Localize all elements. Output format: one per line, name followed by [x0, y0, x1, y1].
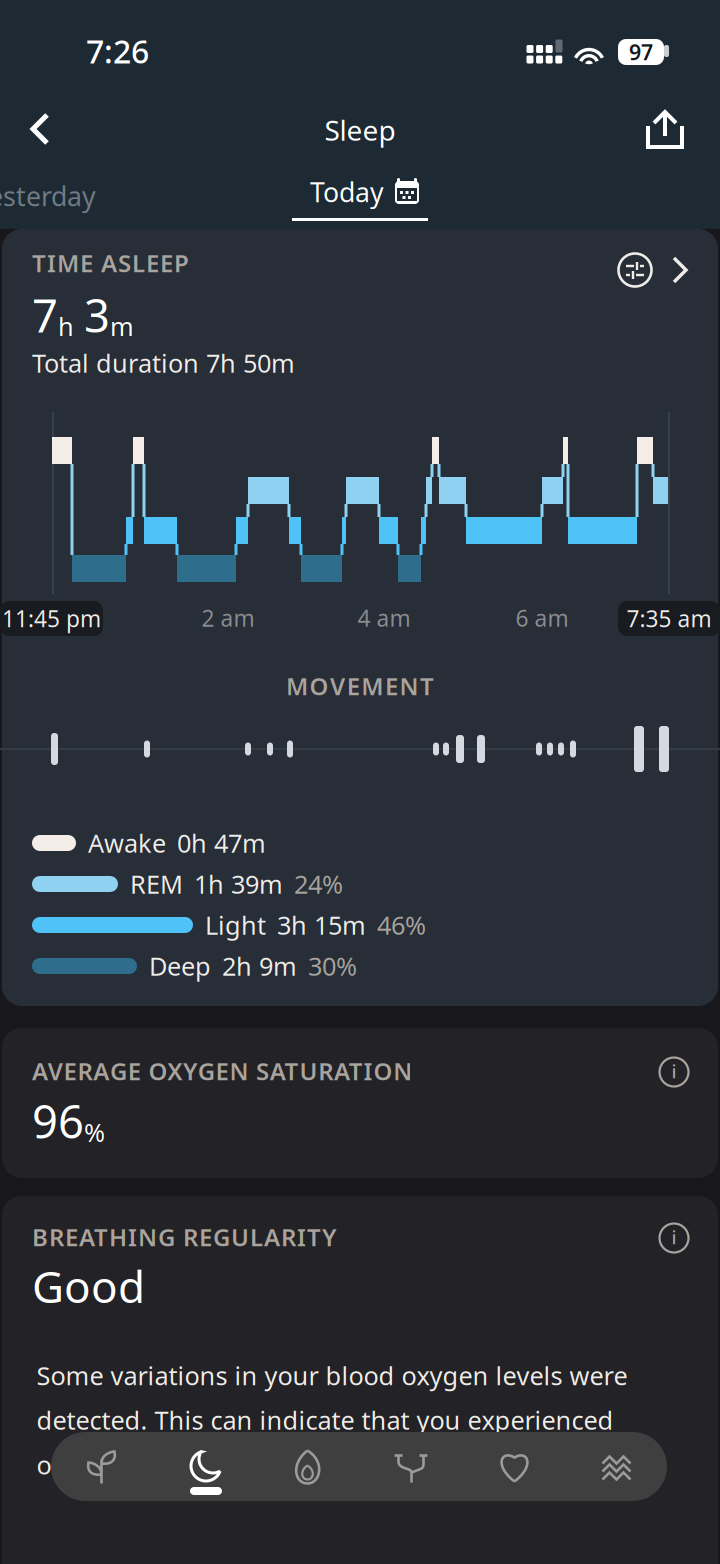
- button[interactable]: Info about average oxygen saturation: [658, 1056, 690, 1088]
- button[interactable]: More details: [660, 250, 700, 290]
- staticText: 97: [629, 38, 653, 66]
- staticText: Awake: [88, 826, 166, 860]
- button[interactable]: esterday: [0, 178, 118, 214]
- button[interactable]: Share: [630, 105, 700, 155]
- staticText: Some variations in your blood oxygen lev…: [36, 1358, 627, 1481]
- staticText: esterday: [0, 178, 96, 214]
- button[interactable]: Adjust: [615, 250, 655, 290]
- button[interactable]: Vitals: [360, 1432, 463, 1501]
- staticText: 1h 39m: [194, 867, 283, 901]
- staticText: Today: [310, 174, 384, 210]
- button[interactable]: Sleep: [154, 1432, 257, 1501]
- staticText: Sleep: [324, 111, 395, 149]
- staticText: 0h 47m: [177, 826, 266, 860]
- staticText: i: [671, 1059, 676, 1083]
- staticText: 46%: [377, 908, 426, 942]
- staticText: h: [58, 309, 74, 343]
- button[interactable]: Today: [292, 176, 428, 228]
- staticText: 7:35 am: [626, 603, 711, 633]
- button[interactable]: Trends: [566, 1432, 669, 1501]
- staticText: BREATHING REGULARITY: [32, 1221, 336, 1253]
- button[interactable]: Back: [8, 104, 72, 154]
- staticText: 3h 15m: [277, 908, 366, 942]
- staticText: Total duration 7h 50m: [32, 346, 295, 380]
- staticText: 7:26: [86, 30, 149, 72]
- staticText: REM: [130, 867, 183, 901]
- staticText: 2h 9m: [222, 949, 297, 983]
- staticText: 6 am: [515, 603, 568, 633]
- staticText: Good: [32, 1257, 145, 1315]
- staticText: 96: [32, 1091, 84, 1151]
- staticText: 2 am: [201, 603, 254, 633]
- staticText: 4 am: [357, 603, 410, 633]
- staticText: 11:45 pm: [2, 603, 101, 633]
- staticText: 3: [84, 285, 110, 345]
- staticText: %: [84, 1115, 105, 1149]
- staticText: 7: [32, 285, 58, 345]
- button[interactable]: Activity: [257, 1432, 360, 1501]
- staticText: MOVEMENT: [286, 670, 434, 702]
- staticText: 30%: [308, 949, 357, 983]
- staticText: i: [671, 1225, 676, 1249]
- staticText: Light: [205, 908, 266, 942]
- staticText: TIME ASLEEP: [32, 247, 189, 279]
- button[interactable]: Readiness: [51, 1432, 154, 1501]
- button[interactable]: Heart: [463, 1432, 566, 1501]
- button[interactable]: Info about breathing regularity: [658, 1222, 690, 1254]
- staticText: AVERAGE OXYGEN SATURATION: [32, 1055, 412, 1087]
- staticText: 24%: [294, 867, 343, 901]
- staticText: m: [110, 309, 134, 343]
- staticText: Deep: [149, 949, 211, 983]
